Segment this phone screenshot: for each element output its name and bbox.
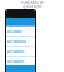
staticText: ACCOMMO: [7, 30, 23, 34]
button[interactable]: ACCOMMODA: [6, 37, 35, 47]
button[interactable]: ACCOMMOD: [6, 47, 35, 57]
button[interactable]: ACCOMMO: [6, 27, 35, 37]
staticText: QUESTIONS: [23, 5, 42, 9]
button[interactable]: ACCOMMOD: [6, 57, 35, 67]
staticText: ACCOMMOD: [7, 50, 25, 54]
staticText: ACCOMMOD: [7, 60, 25, 64]
staticText: HUNDREDS OF: [21, 1, 44, 5]
staticText: ACCOMMODA: [7, 40, 27, 44]
